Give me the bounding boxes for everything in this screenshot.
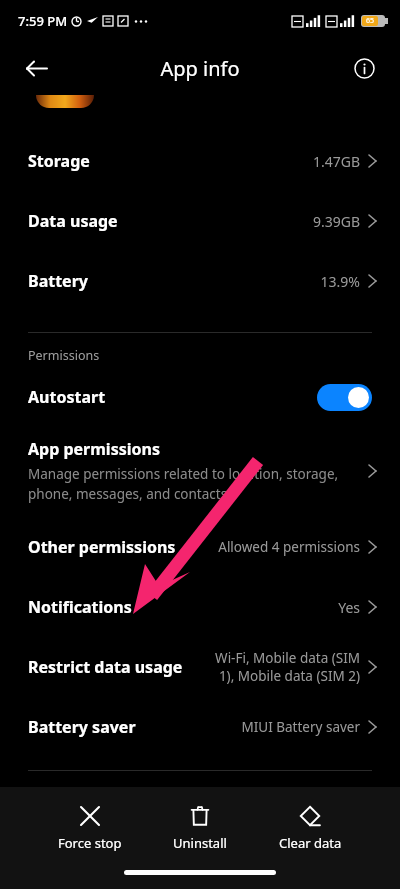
button[interactable]: Autostart	[0, 375, 400, 419]
staticText: Clear data	[279, 834, 342, 852]
button[interactable]: App permissions	[0, 432, 400, 509]
button[interactable]: Battery saver	[0, 697, 400, 757]
staticText: Allowed 4 permissions	[218, 538, 360, 556]
button[interactable]: Notifications	[0, 577, 400, 637]
staticText: 13.9%	[320, 272, 360, 291]
staticText: 65	[366, 16, 375, 26]
staticText: 7:59 PM	[18, 12, 68, 30]
staticText: Restrict data usage	[28, 656, 183, 678]
staticText: 9.39GB	[312, 212, 360, 231]
staticText: Yes	[338, 598, 360, 617]
staticText: Data usage	[28, 210, 118, 232]
button[interactable]: Force stop	[44, 801, 136, 856]
button[interactable]: Other permissions	[0, 517, 400, 577]
staticText: Storage	[28, 150, 90, 172]
staticText: Autostart	[28, 386, 106, 408]
button[interactable]: Clear data	[264, 801, 356, 856]
staticText: 1.47GB	[312, 152, 360, 171]
button[interactable]: Uninstall	[154, 801, 246, 856]
staticText: Manage permissions related to location, …	[28, 465, 339, 503]
staticText: Battery saver	[28, 716, 136, 738]
button[interactable]: Data usage	[0, 191, 400, 251]
staticText: App info	[160, 55, 240, 82]
staticText: Other permissions	[28, 536, 176, 558]
staticText: Wi-Fi, Mobile data (SIM 1), Mobile data …	[215, 649, 360, 685]
staticText: App permissions	[28, 438, 160, 460]
staticText: MIUI Battery saver	[241, 718, 360, 736]
staticText: Uninstall	[173, 834, 227, 852]
staticText: Permissions	[28, 347, 100, 364]
button[interactable]: Storage	[0, 131, 400, 191]
staticText: Notifications	[28, 596, 132, 618]
button[interactable]: App details	[342, 46, 386, 90]
staticText: Battery	[28, 270, 88, 292]
staticText: Force stop	[58, 834, 122, 852]
button[interactable]: Back	[14, 46, 58, 90]
button[interactable]: Battery	[0, 251, 400, 311]
button[interactable]: Restrict data usage	[0, 637, 400, 697]
